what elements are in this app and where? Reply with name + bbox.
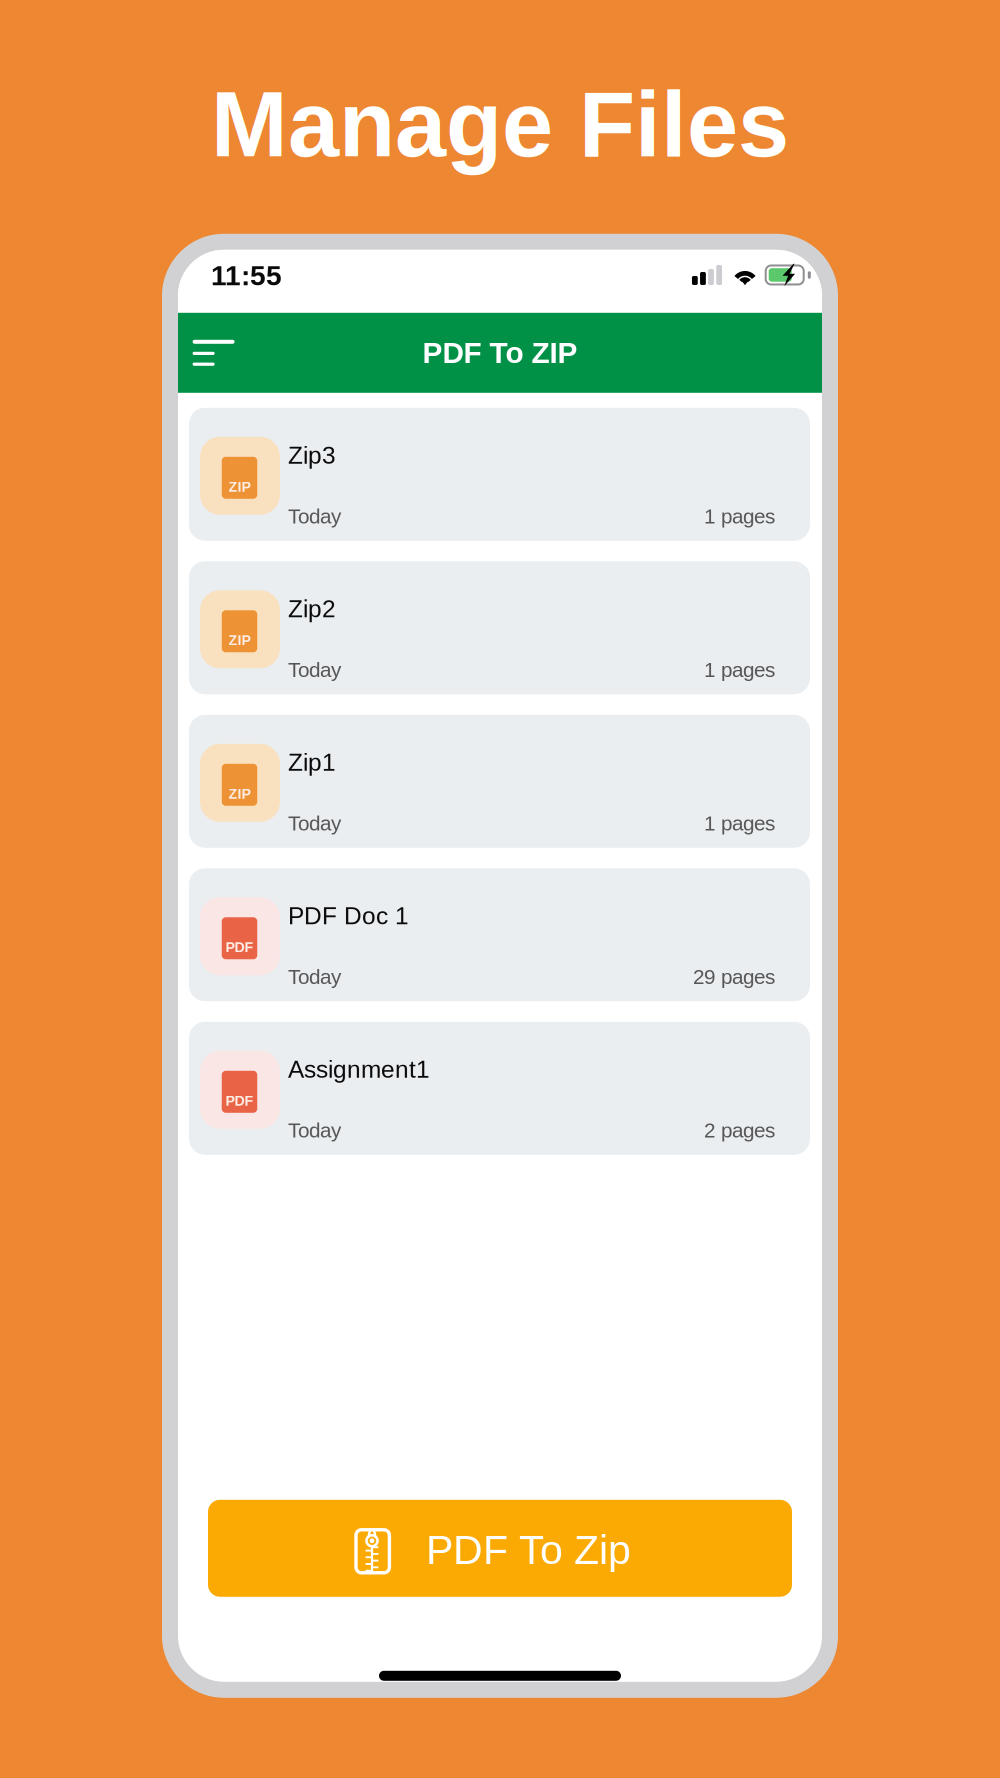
- button[interactable]: PDF: [189, 868, 810, 1001]
- button[interactable]: PDF: [189, 1022, 810, 1155]
- staticText: Today: [288, 1119, 341, 1142]
- staticText: Zip1: [288, 749, 336, 776]
- button[interactable]: ZIP: [189, 715, 810, 848]
- staticText: Today: [288, 505, 341, 528]
- staticText: 11:55: [211, 260, 282, 291]
- staticText: 1 pages: [704, 812, 775, 835]
- staticText: PDF Doc 1: [288, 902, 409, 930]
- staticText: PDF To Zip: [426, 1527, 631, 1573]
- staticText: PDF: [225, 939, 253, 955]
- staticText: 1 pages: [704, 658, 775, 681]
- staticText: 2 pages: [704, 1119, 775, 1142]
- staticText: Assignment1: [288, 1056, 430, 1083]
- button[interactable]: ZIP: [189, 408, 810, 541]
- staticText: ZIP: [228, 479, 250, 495]
- staticText: Today: [288, 658, 341, 681]
- staticText: ZIP: [228, 786, 250, 802]
- staticText: Zip3: [288, 442, 336, 469]
- button[interactable]: Menu: [178, 313, 259, 393]
- staticText: ZIP: [228, 632, 250, 648]
- staticText: 1 pages: [704, 505, 775, 528]
- button[interactable]: ZIP: [189, 561, 810, 694]
- staticText: 29 pages: [693, 965, 775, 988]
- button[interactable]: PDF To Zip: [208, 1500, 792, 1597]
- staticText: Zip2: [288, 595, 336, 623]
- staticText: PDF To ZIP: [422, 336, 577, 369]
- staticText: Today: [288, 965, 341, 988]
- staticText: PDF: [225, 1093, 253, 1109]
- staticText: Today: [288, 812, 341, 835]
- staticText: Manage Files: [211, 73, 789, 176]
